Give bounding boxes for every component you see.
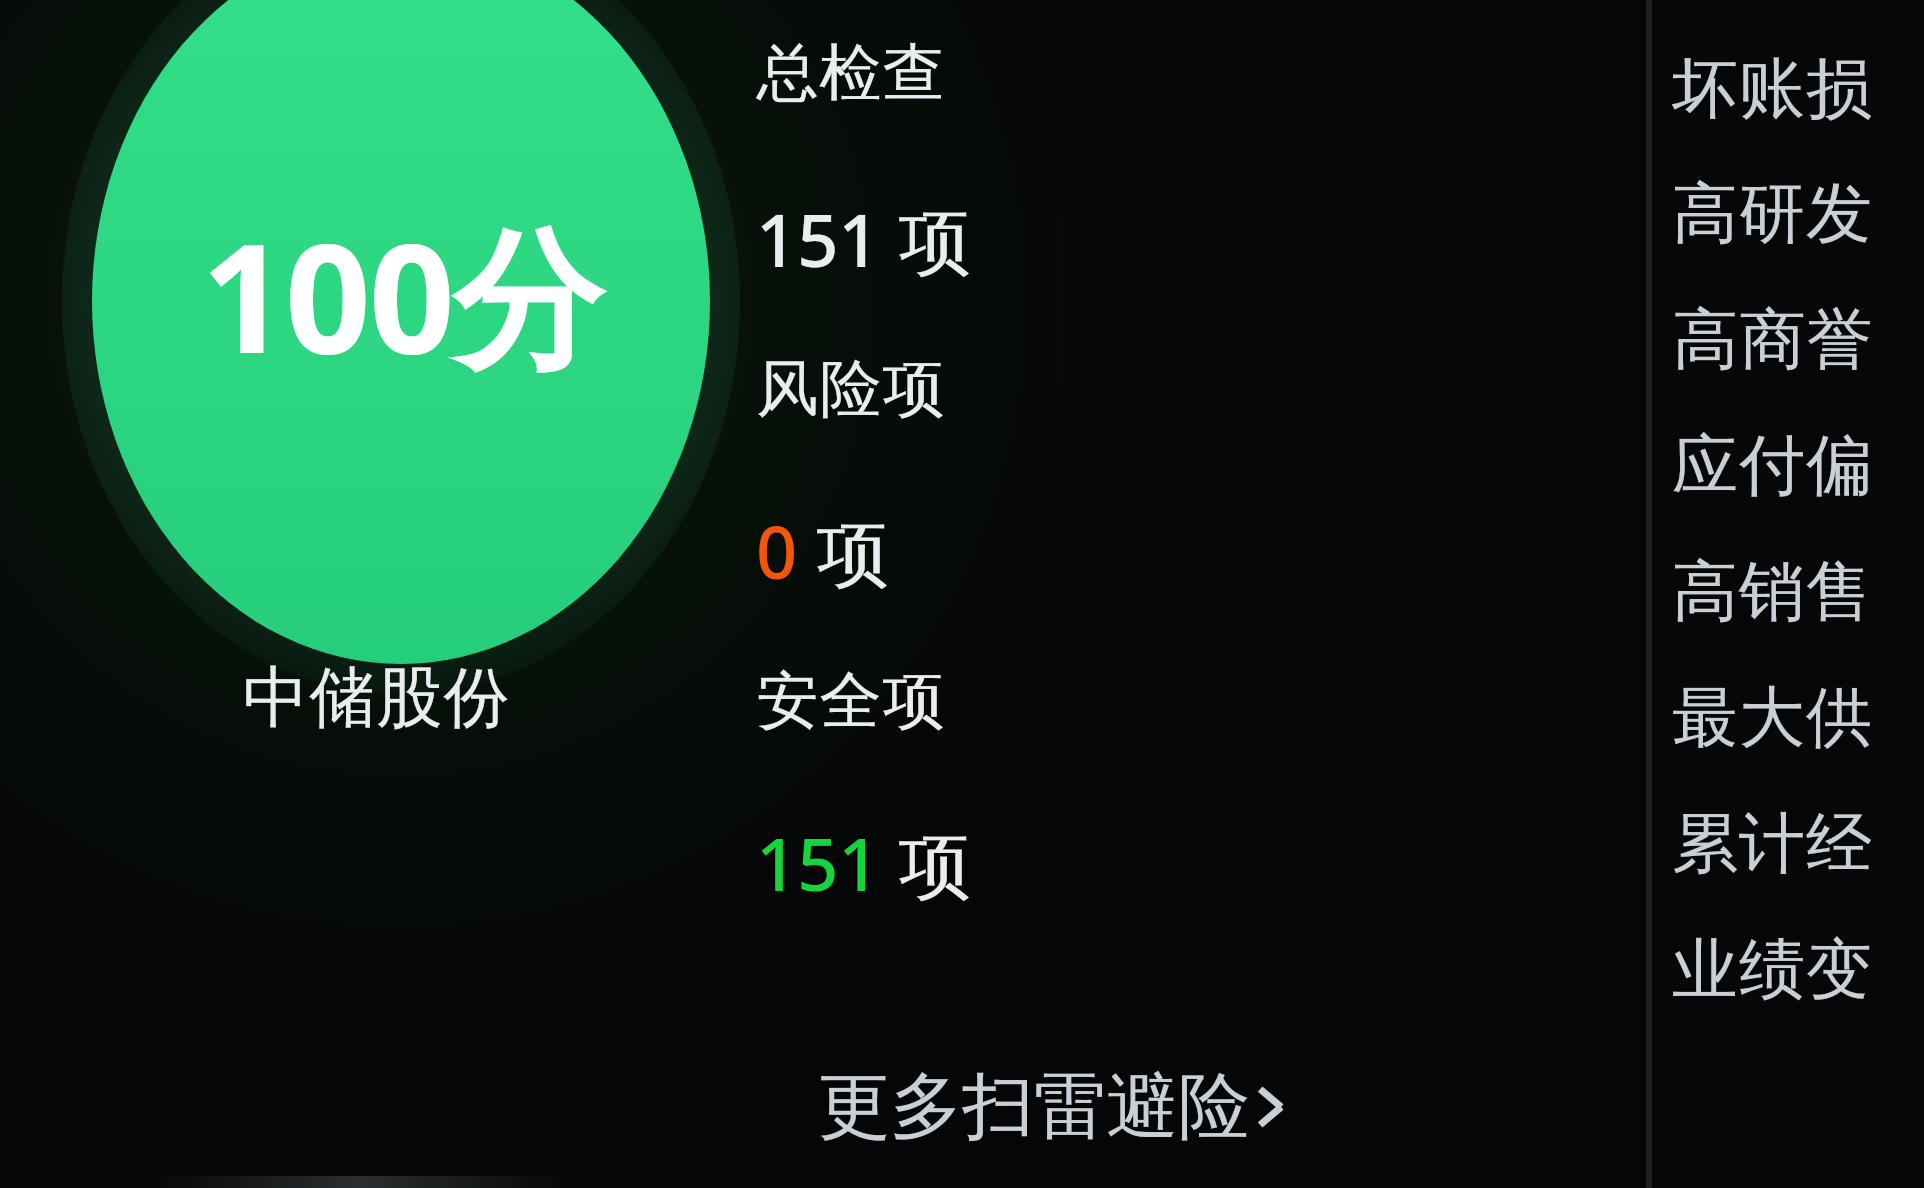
staticText: 151 <box>756 814 880 912</box>
button[interactable]: 高商誉 <box>1672 276 1924 402</box>
button[interactable]: 风险项 <box>756 350 1056 428</box>
button[interactable]: 坏账损失 <box>1672 26 1924 150</box>
staticText: 高销售费 <box>1672 550 1924 633</box>
button[interactable]: 应付偏高 <box>1672 402 1924 528</box>
button[interactable]: 安全项 <box>756 662 1056 740</box>
staticText: 高商誉 <box>1672 298 1873 381</box>
staticText: 项 <box>880 190 971 288</box>
staticText: 最大供应 <box>1672 676 1924 759</box>
button[interactable]: 高销售费 <box>1672 528 1924 654</box>
button[interactable]: 高研发费 <box>1672 150 1924 276</box>
staticText: 更多扫雷避险 <box>818 1062 1250 1153</box>
button[interactable]: 最大供应 <box>1672 654 1924 780</box>
staticText: 0 <box>756 502 798 600</box>
staticText: 业绩变脸 <box>1672 928 1924 1011</box>
staticText: 高研发费 <box>1672 172 1924 255</box>
staticText: 累计经营 <box>1672 802 1924 885</box>
staticText: 项 <box>798 502 889 600</box>
button[interactable]: 中储股份 <box>242 654 578 740</box>
button[interactable]: 体检评分 100分 <box>92 0 710 664</box>
staticText: 总检查 <box>756 34 945 112</box>
staticText: 100分 <box>201 193 601 398</box>
staticText: 项 <box>880 814 971 912</box>
staticText: 风险项 <box>756 350 945 428</box>
staticText: 151 <box>756 190 880 288</box>
button[interactable]: 业绩变脸 <box>1672 906 1924 1032</box>
button[interactable]: 更多扫雷避险 <box>818 1052 1288 1162</box>
button[interactable]: 总检查 <box>756 34 1056 112</box>
button[interactable]: 累计经营 <box>1672 780 1924 906</box>
button[interactable]: 151 <box>756 190 1056 288</box>
staticText: 中储股份 <box>242 656 510 739</box>
staticText: 安全项 <box>756 662 945 740</box>
staticText: 坏账损失 <box>1672 47 1924 130</box>
button[interactable]: 0 <box>756 502 1056 600</box>
staticText: 应付偏高 <box>1672 424 1924 507</box>
button[interactable]: 151 <box>756 814 1056 912</box>
